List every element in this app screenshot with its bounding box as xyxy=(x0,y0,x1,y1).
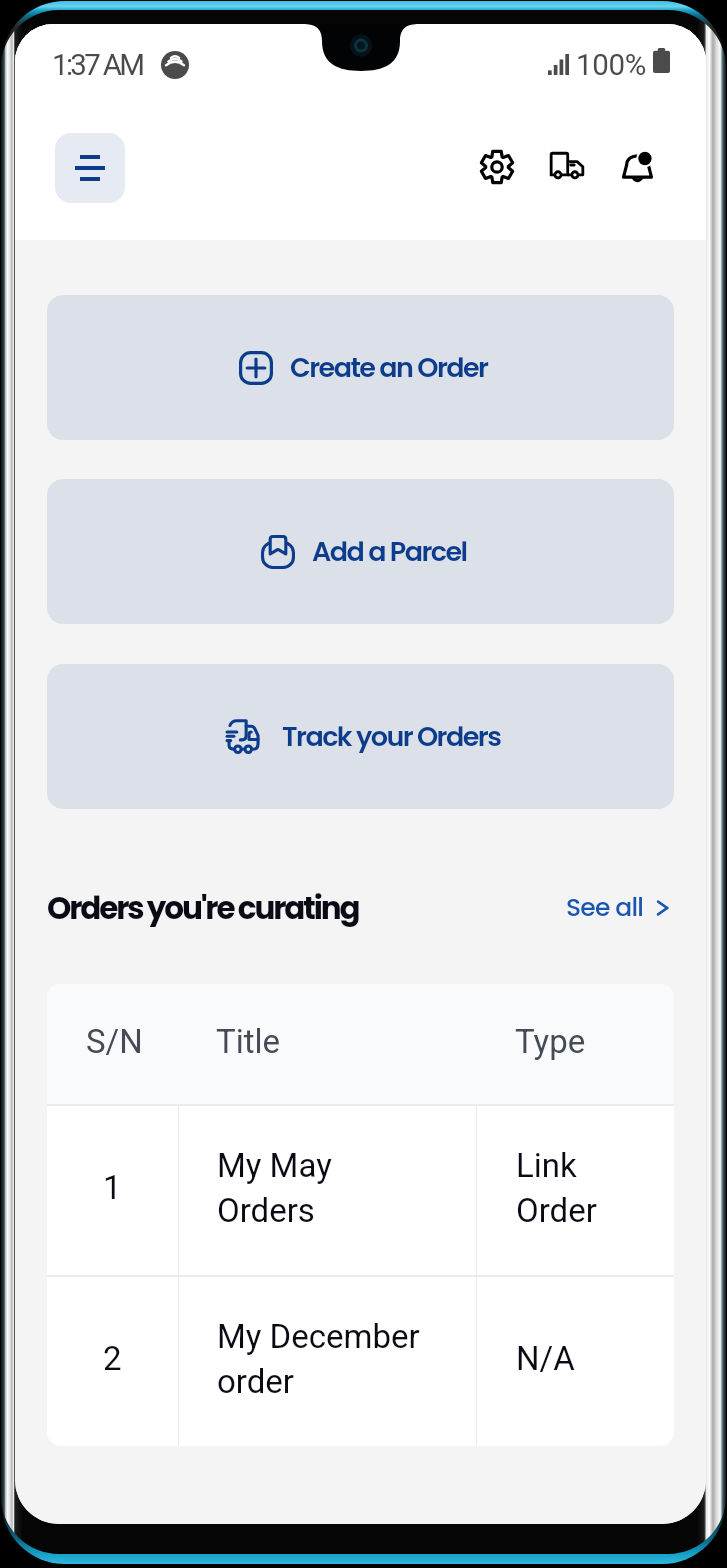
staticText: 1:37 AM xyxy=(52,48,143,83)
button[interactable]: Create an Order xyxy=(47,295,674,440)
button[interactable]: 2 xyxy=(47,1277,674,1446)
button[interactable]: Add a Parcel xyxy=(47,479,674,624)
staticText: See all xyxy=(566,890,644,925)
staticText: My December order xyxy=(217,1317,420,1401)
staticText: Title xyxy=(216,1022,281,1061)
staticText: 1 xyxy=(103,1168,122,1207)
staticText: Add a Parcel xyxy=(312,533,467,571)
button[interactable]: 1 xyxy=(47,1106,674,1275)
button[interactable]: Notifications xyxy=(614,143,664,193)
button[interactable]: Track your Orders xyxy=(47,664,674,809)
staticText: N/A xyxy=(516,1339,575,1378)
staticText: Create an Order xyxy=(290,349,488,387)
staticText: Link Order xyxy=(516,1146,597,1230)
button[interactable]: See all xyxy=(566,890,670,925)
staticText: 2 xyxy=(103,1339,122,1378)
button[interactable]: Open menu xyxy=(55,133,125,203)
staticText: Orders you're curating xyxy=(47,886,359,929)
staticText: 100% xyxy=(576,48,647,83)
staticText: Type xyxy=(515,1022,586,1061)
staticText: S/N xyxy=(86,1022,143,1061)
staticText: Track your Orders xyxy=(282,718,501,756)
button[interactable]: Deliveries xyxy=(544,143,594,193)
staticText: My May Orders xyxy=(217,1146,332,1230)
button[interactable]: Settings xyxy=(474,143,524,193)
